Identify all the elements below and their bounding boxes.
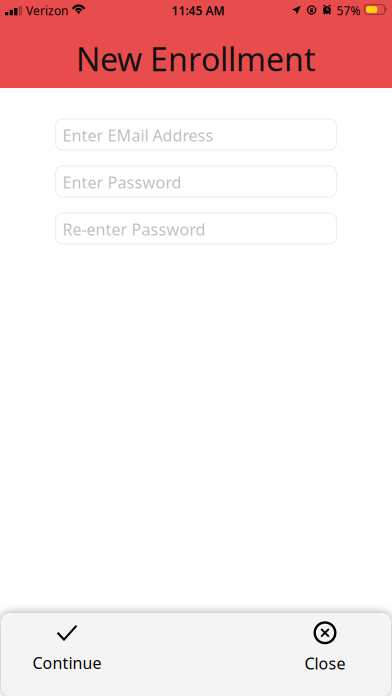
staticText: Verizon [26, 2, 68, 18]
staticText: Continue [32, 652, 101, 673]
staticText: Enter Password [62, 172, 181, 193]
staticText: Close [304, 653, 345, 674]
button[interactable]: Re-enter Password [55, 213, 336, 244]
staticText: 57% [336, 2, 360, 18]
button[interactable]: Enter EMail Address [55, 119, 336, 150]
button[interactable]: Continue [1, 613, 133, 696]
staticText: 11:45 AM [171, 2, 224, 18]
staticText: New Enrollment [76, 37, 316, 80]
staticText: Re-enter Password [62, 219, 205, 240]
staticText: Enter EMail Address [62, 125, 213, 146]
button[interactable]: Close [259, 613, 391, 696]
button[interactable]: Enter Password [55, 166, 336, 197]
